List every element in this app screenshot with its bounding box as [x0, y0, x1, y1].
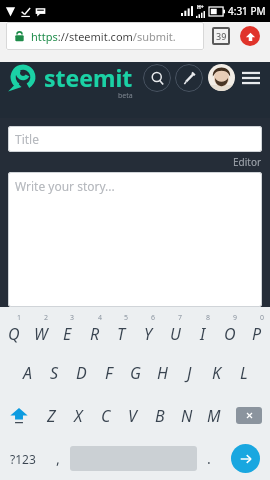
button[interactable]: M — [200, 394, 227, 437]
staticText: 9 — [233, 313, 238, 323]
button[interactable]: Menu — [240, 67, 262, 89]
button[interactable]: Profile — [208, 64, 235, 91]
staticText: 8 — [206, 313, 211, 323]
staticText: 2 — [44, 313, 49, 323]
staticText: Y — [144, 323, 153, 345]
staticText: 5 — [124, 313, 129, 323]
button[interactable]: G — [122, 351, 149, 394]
button[interactable]: X — [65, 394, 92, 437]
button[interactable]: Enter — [221, 437, 270, 480]
button[interactable]: 9 — [216, 307, 243, 351]
staticText: R — [90, 323, 100, 345]
staticText: B — [155, 405, 165, 427]
button[interactable]: H — [149, 351, 176, 394]
staticText: 7 — [178, 313, 183, 323]
staticText: O — [224, 323, 236, 345]
staticText: , — [56, 449, 60, 468]
staticText: H+ — [197, 4, 204, 11]
staticText: V — [128, 405, 137, 427]
staticText: ?123 — [10, 451, 36, 467]
button[interactable]: 6 — [135, 307, 162, 351]
staticText: steemit — [44, 62, 133, 93]
staticText: A — [23, 362, 32, 384]
button[interactable]: L — [230, 351, 257, 394]
staticText: I — [200, 323, 206, 345]
staticText: 0 — [260, 313, 265, 323]
staticText: T — [117, 323, 126, 345]
button[interactable]: S — [41, 351, 68, 394]
button[interactable]: A — [13, 351, 41, 394]
button[interactable]: Scroll to top — [240, 26, 260, 46]
button[interactable]: J — [176, 351, 203, 394]
button[interactable]: F — [95, 351, 122, 394]
button[interactable]: Editor — [233, 155, 262, 169]
button[interactable]: 3 — [54, 307, 81, 351]
button[interactable]: Z — [38, 394, 65, 437]
staticText: https://steemit.com/submit. — [31, 29, 176, 44]
staticText: D — [76, 362, 87, 384]
staticText: M — [207, 405, 221, 427]
staticText: H — [157, 362, 168, 384]
button[interactable]: , — [46, 437, 70, 480]
staticText: Write your story... — [15, 178, 115, 194]
staticText: 1 — [17, 313, 22, 323]
button[interactable]: ?123 — [0, 437, 46, 480]
staticText: S — [50, 362, 59, 384]
staticText: N — [181, 405, 193, 427]
button[interactable]: Search — [143, 64, 171, 92]
staticText: K — [212, 362, 221, 384]
button[interactable]: 1 — [0, 307, 27, 351]
staticText: beta — [118, 91, 133, 101]
staticText: U — [170, 323, 181, 345]
button[interactable]: Backspace — [227, 394, 270, 437]
button[interactable]: Write your story... — [8, 172, 262, 307]
staticText: 4:31 PM — [228, 4, 266, 18]
staticText: Title — [15, 131, 39, 147]
staticText: L — [240, 362, 248, 384]
button[interactable]: 7 — [162, 307, 189, 351]
button[interactable]: 4 — [81, 307, 108, 351]
button[interactable]: B — [146, 394, 173, 437]
button[interactable]: C — [92, 394, 119, 437]
button[interactable]: New post — [175, 64, 203, 92]
button[interactable]: K — [203, 351, 230, 394]
button[interactable]: . — [197, 437, 221, 480]
staticText: 4 — [98, 313, 103, 323]
button[interactable]: 0 — [243, 307, 270, 351]
button[interactable]: 2 — [27, 307, 54, 351]
staticText: Z — [47, 405, 56, 427]
staticText: E — [63, 323, 72, 345]
button[interactable]: Tabs, 39 open — [212, 27, 230, 45]
button[interactable]: V — [119, 394, 146, 437]
button[interactable]: D — [68, 351, 95, 394]
button[interactable]: 8 — [189, 307, 216, 351]
staticText: X — [74, 405, 83, 427]
staticText: . — [207, 449, 211, 468]
staticText: J — [187, 362, 192, 384]
button[interactable]: 5 — [108, 307, 135, 351]
staticText: W — [34, 323, 48, 345]
button[interactable]: N — [173, 394, 200, 437]
button[interactable]: steemit — [8, 62, 133, 93]
staticText: P — [252, 323, 262, 345]
button[interactable]: Title — [8, 126, 262, 152]
staticText: G — [130, 362, 141, 384]
staticText: 3 — [70, 313, 75, 323]
staticText: 6 — [151, 313, 156, 323]
button[interactable]: Shift — [0, 394, 38, 437]
staticText: C — [101, 405, 111, 427]
staticText: 39 — [216, 30, 227, 42]
staticText: F — [105, 362, 113, 384]
button[interactable]: https://steemit.com/submit. — [6, 22, 204, 50]
staticText: Q — [8, 323, 20, 345]
